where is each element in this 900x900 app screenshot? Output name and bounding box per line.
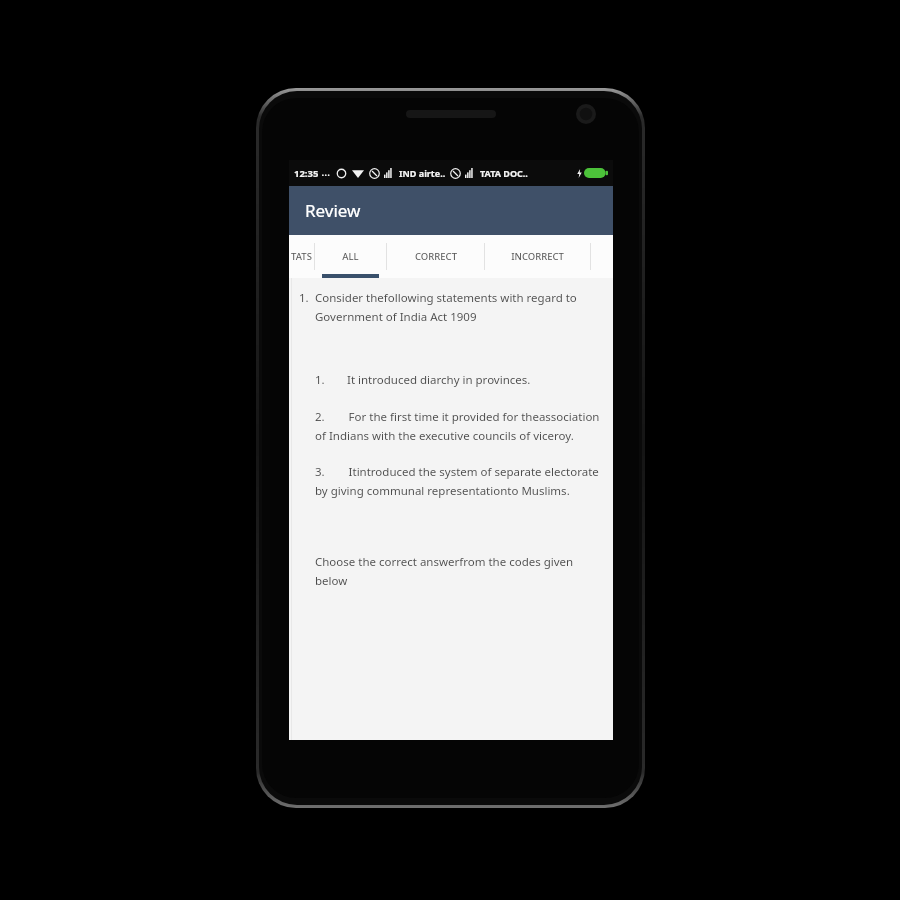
staticText: 12:35 [294,167,319,180]
staticText: Consider thefollowing statements with re… [315,290,603,324]
staticText: IND airte.. [399,167,446,179]
staticText: It introduced diarchy in provinces. [347,372,531,388]
staticText: INCORRECT [511,250,564,263]
button[interactable]: INCORRECT [485,235,590,278]
staticText: TATS [291,250,312,263]
staticText: CORRECT [415,250,457,263]
staticText: 3. Itintroduced the system of separate e… [315,464,603,498]
button[interactable]: ALL [315,235,386,278]
staticText: Choose the correct answerfrom the codes … [315,554,603,588]
staticText: 2. For the first time it provided for th… [315,409,603,443]
staticText: TATA DOC.. [480,167,528,179]
staticText: 1. [299,290,309,306]
button[interactable]: TATS [289,235,314,278]
button[interactable]: CORRECT [387,235,484,278]
staticText: ALL [342,250,359,263]
staticText: 1. [315,372,325,388]
button[interactable]: Review [289,186,613,235]
staticText: Review [305,199,361,222]
